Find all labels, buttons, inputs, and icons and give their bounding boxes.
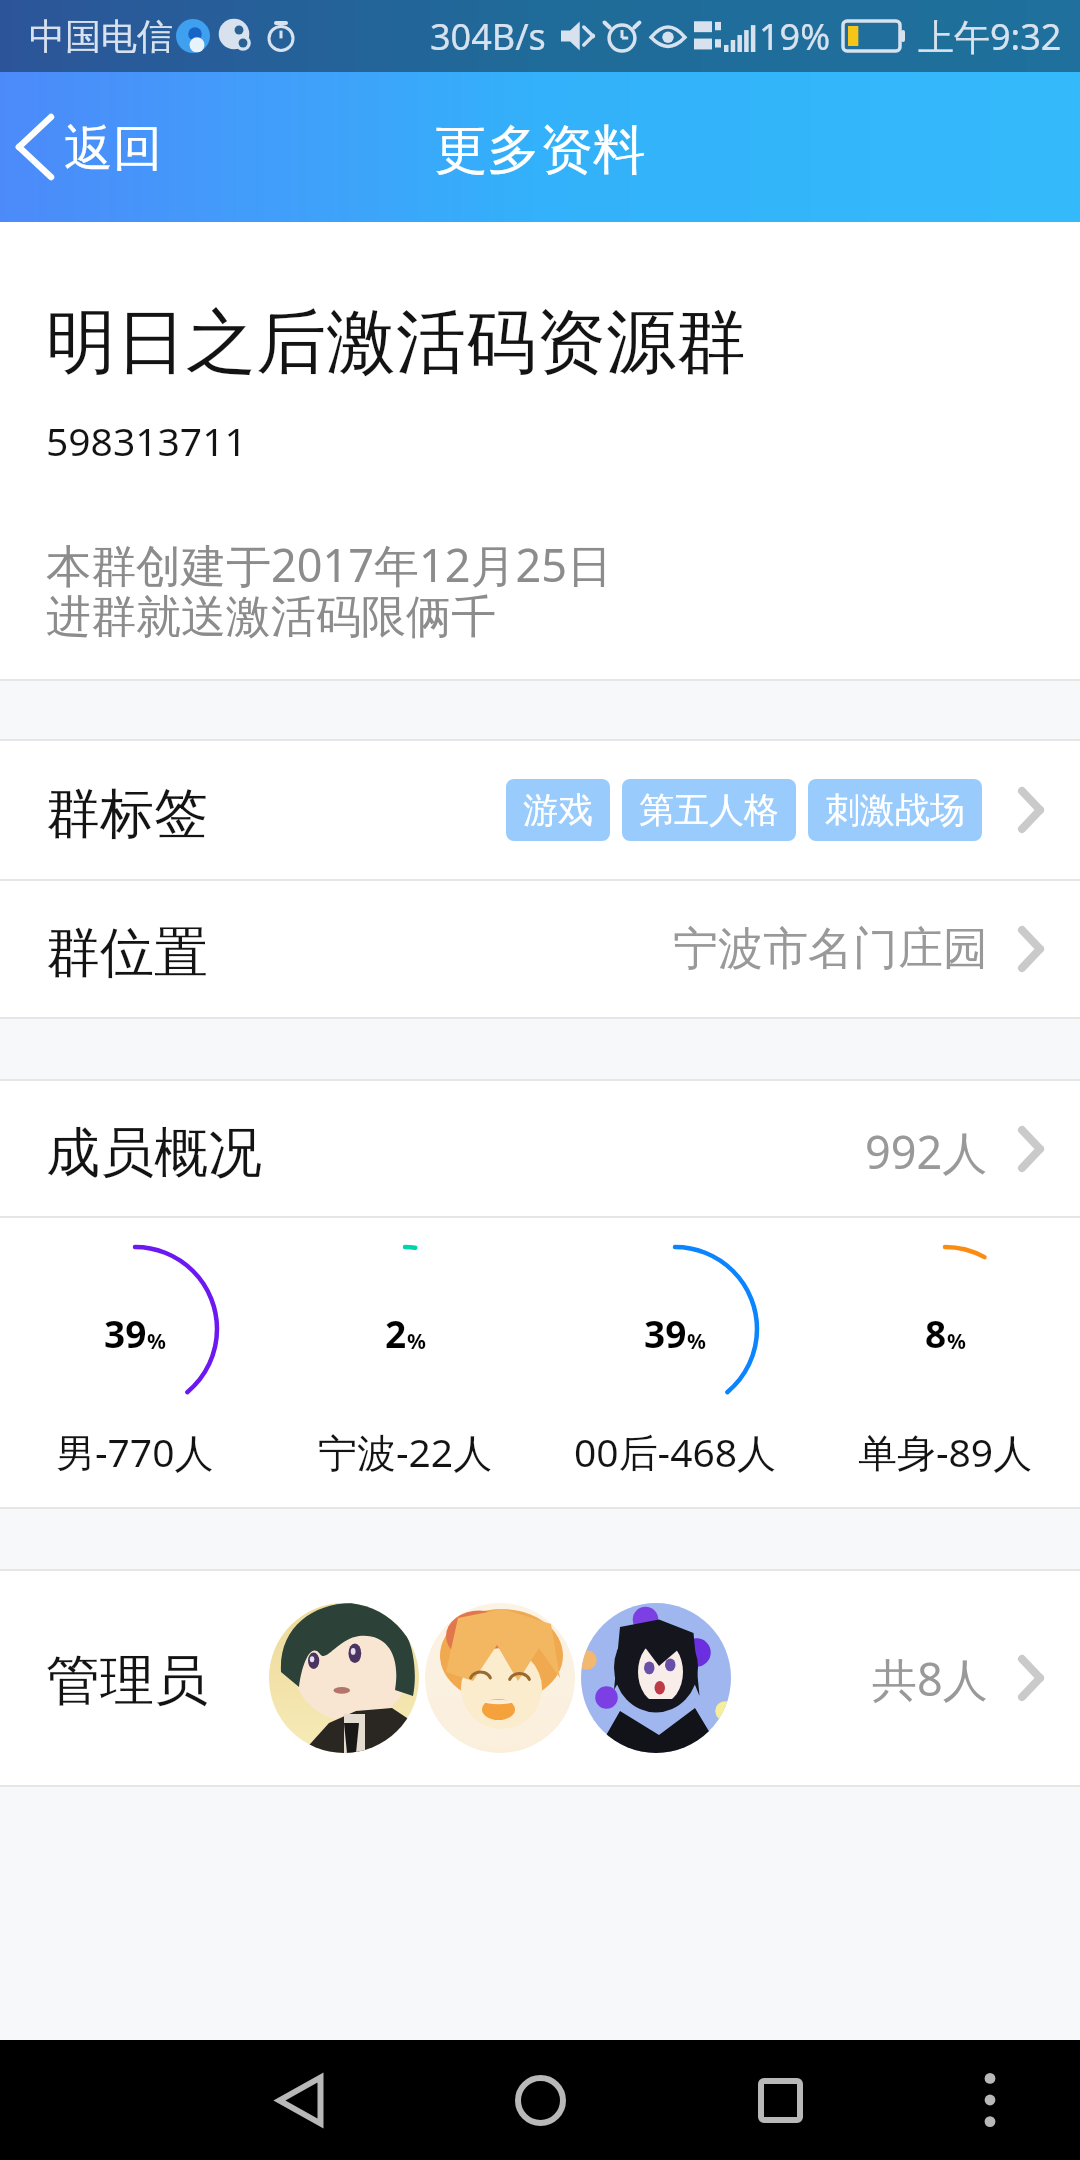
staticText: 男-770人	[56, 1425, 214, 1478]
staticText: 中国电信	[29, 14, 173, 59]
staticText: 598313711	[46, 414, 247, 467]
staticText: 管理员	[46, 1647, 208, 1715]
staticText: 明日之后激活码资源群	[46, 299, 746, 387]
staticText: 上午9:32	[918, 12, 1062, 61]
staticText: 单身-89人	[858, 1425, 1033, 1478]
staticText: 39	[104, 1308, 147, 1358]
staticText: 304B/s	[430, 12, 546, 61]
other: Open	[1019, 788, 1043, 832]
button[interactable]: 成员概况	[0, 1081, 1080, 1216]
button[interactable]: 2	[270, 1218, 540, 1507]
staticText: %	[147, 1327, 166, 1356]
button[interactable]: 返回	[0, 72, 182, 222]
staticText: 2	[385, 1308, 407, 1358]
button[interactable]: More options	[950, 2060, 1030, 2140]
staticText: 成员概况	[46, 1119, 262, 1187]
staticText: %	[947, 1327, 966, 1356]
staticText: 992人	[865, 1121, 988, 1182]
button[interactable]: 群位置	[0, 881, 1080, 1017]
staticText: 00后-468人	[574, 1425, 777, 1478]
staticText: 刺激战场	[825, 788, 965, 832]
button[interactable]: Recents	[720, 2040, 840, 2160]
staticText: 群位置	[46, 919, 208, 987]
staticText: 8	[925, 1308, 947, 1358]
staticText: 群标签	[46, 780, 208, 848]
staticText: 第五人格	[639, 788, 779, 832]
other: Open	[1019, 1127, 1043, 1171]
staticText: 共8人	[872, 1648, 988, 1709]
button[interactable]: Back	[240, 2040, 360, 2160]
staticText: 本群创建于2017年12月25日 进群就送激活码限俩千	[46, 534, 612, 645]
staticText: 返回	[64, 118, 162, 180]
staticText: 游戏	[523, 788, 593, 832]
staticText: 更多资料	[434, 117, 646, 184]
staticText: 宁波-22人	[318, 1425, 493, 1478]
staticText: %	[687, 1327, 706, 1356]
staticText: %	[407, 1327, 426, 1356]
button[interactable]: 8	[810, 1218, 1080, 1507]
staticText: 19%	[759, 12, 831, 61]
button[interactable]: Home	[480, 2040, 600, 2160]
staticText: 宁波市名门庄园	[673, 921, 988, 978]
button[interactable]: 39	[0, 1218, 270, 1507]
button[interactable]: 39	[540, 1218, 810, 1507]
button[interactable]: 群标签	[0, 741, 1080, 879]
other: Open	[1019, 927, 1043, 971]
staticText: 39	[644, 1308, 687, 1358]
other: Open	[1019, 1656, 1043, 1700]
button[interactable]: 管理员	[0, 1571, 1080, 1785]
